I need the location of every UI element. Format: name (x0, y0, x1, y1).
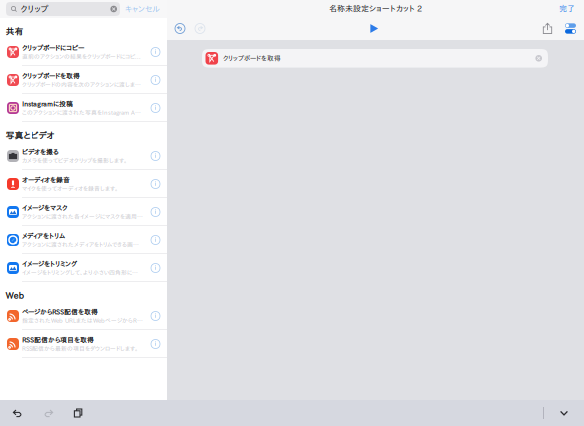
staticText: イメージをトリミングして、より小さい四角形に… (22, 270, 138, 275)
staticText: クリップボードにコピー (22, 44, 84, 51)
staticText: RSS配信から最新の項目をダウンロードします。 (22, 346, 138, 351)
button[interactable]: Undo (10, 405, 26, 421)
staticText: クリップボードを取得 (223, 55, 281, 62)
staticText: ビデオを撮る (22, 148, 59, 155)
button[interactable]: Hide keyboard (556, 405, 572, 421)
button[interactable]: クリップボードにコピー (0, 38, 167, 66)
staticText: クリップボードの内容を次のアクションに渡しま… (22, 82, 141, 87)
button[interactable]: Redo (40, 405, 56, 421)
button[interactable]: クリップボードを取得 (0, 66, 167, 94)
staticText: マイクを使ってオーディオを録音します。 (22, 186, 118, 191)
staticText: クリップボードを取得 (22, 72, 80, 79)
staticText: 共有 (5, 27, 23, 36)
button[interactable]: Redo (193, 22, 206, 35)
staticText: イメージをマスク (22, 204, 67, 211)
button[interactable]: Undo (173, 22, 186, 35)
button[interactable]: イメージをマスク (0, 198, 167, 226)
staticText: クリップ (20, 5, 48, 13)
staticText: アクションに渡された各イメージにマスクを適用… (22, 214, 143, 219)
staticText: 完了 (559, 4, 575, 12)
button[interactable]: メディアをトリム (0, 226, 167, 254)
staticText: オーディオを録音 (22, 176, 70, 183)
staticText: 指定されたWeb URLまたはWebページからRSS… (22, 318, 143, 323)
staticText: このアクションに渡された写真をInstagram App… (22, 110, 143, 115)
button[interactable]: イメージをトリミング (0, 254, 167, 282)
staticText: Instagramに投稿 (22, 100, 73, 107)
staticText: 写真とビデオ (5, 131, 54, 140)
button[interactable]: Instagramに投稿 (0, 94, 167, 122)
button[interactable]: Shortcut settings (565, 23, 576, 34)
staticText: ページからRSS配信を取得 (22, 308, 98, 315)
staticText: RSS配信から項目を取得 (22, 336, 94, 343)
button[interactable]: ビデオを撮る (0, 142, 167, 170)
staticText: キャンセル (125, 5, 160, 13)
staticText: 名称未設定ショートカット 2 (329, 4, 422, 12)
button[interactable]: オーディオを録音 (0, 170, 167, 198)
button[interactable]: クリップボードを取得 (202, 49, 548, 68)
button[interactable]: RSS配信から項目を取得 (0, 330, 167, 358)
button[interactable]: Run (367, 22, 380, 35)
button[interactable]: 完了 (553, 1, 584, 15)
staticText: カメラを使ってビデオクリップを撮影します。 (22, 158, 127, 163)
staticText: メディアをトリム (22, 232, 65, 239)
staticText: 直前のアクションの結果をクリップボードにコピー… (22, 54, 143, 59)
staticText: アクションに渡されたメディアをトリムできる画… (22, 242, 139, 247)
button[interactable]: ページからRSS配信を取得 (0, 302, 167, 330)
button[interactable]: キャンセル (125, 2, 160, 16)
staticText: Web (5, 291, 23, 300)
button[interactable]: Share (541, 21, 554, 35)
staticText: イメージをトリミング (22, 260, 77, 267)
button[interactable]: Paste (70, 405, 86, 421)
